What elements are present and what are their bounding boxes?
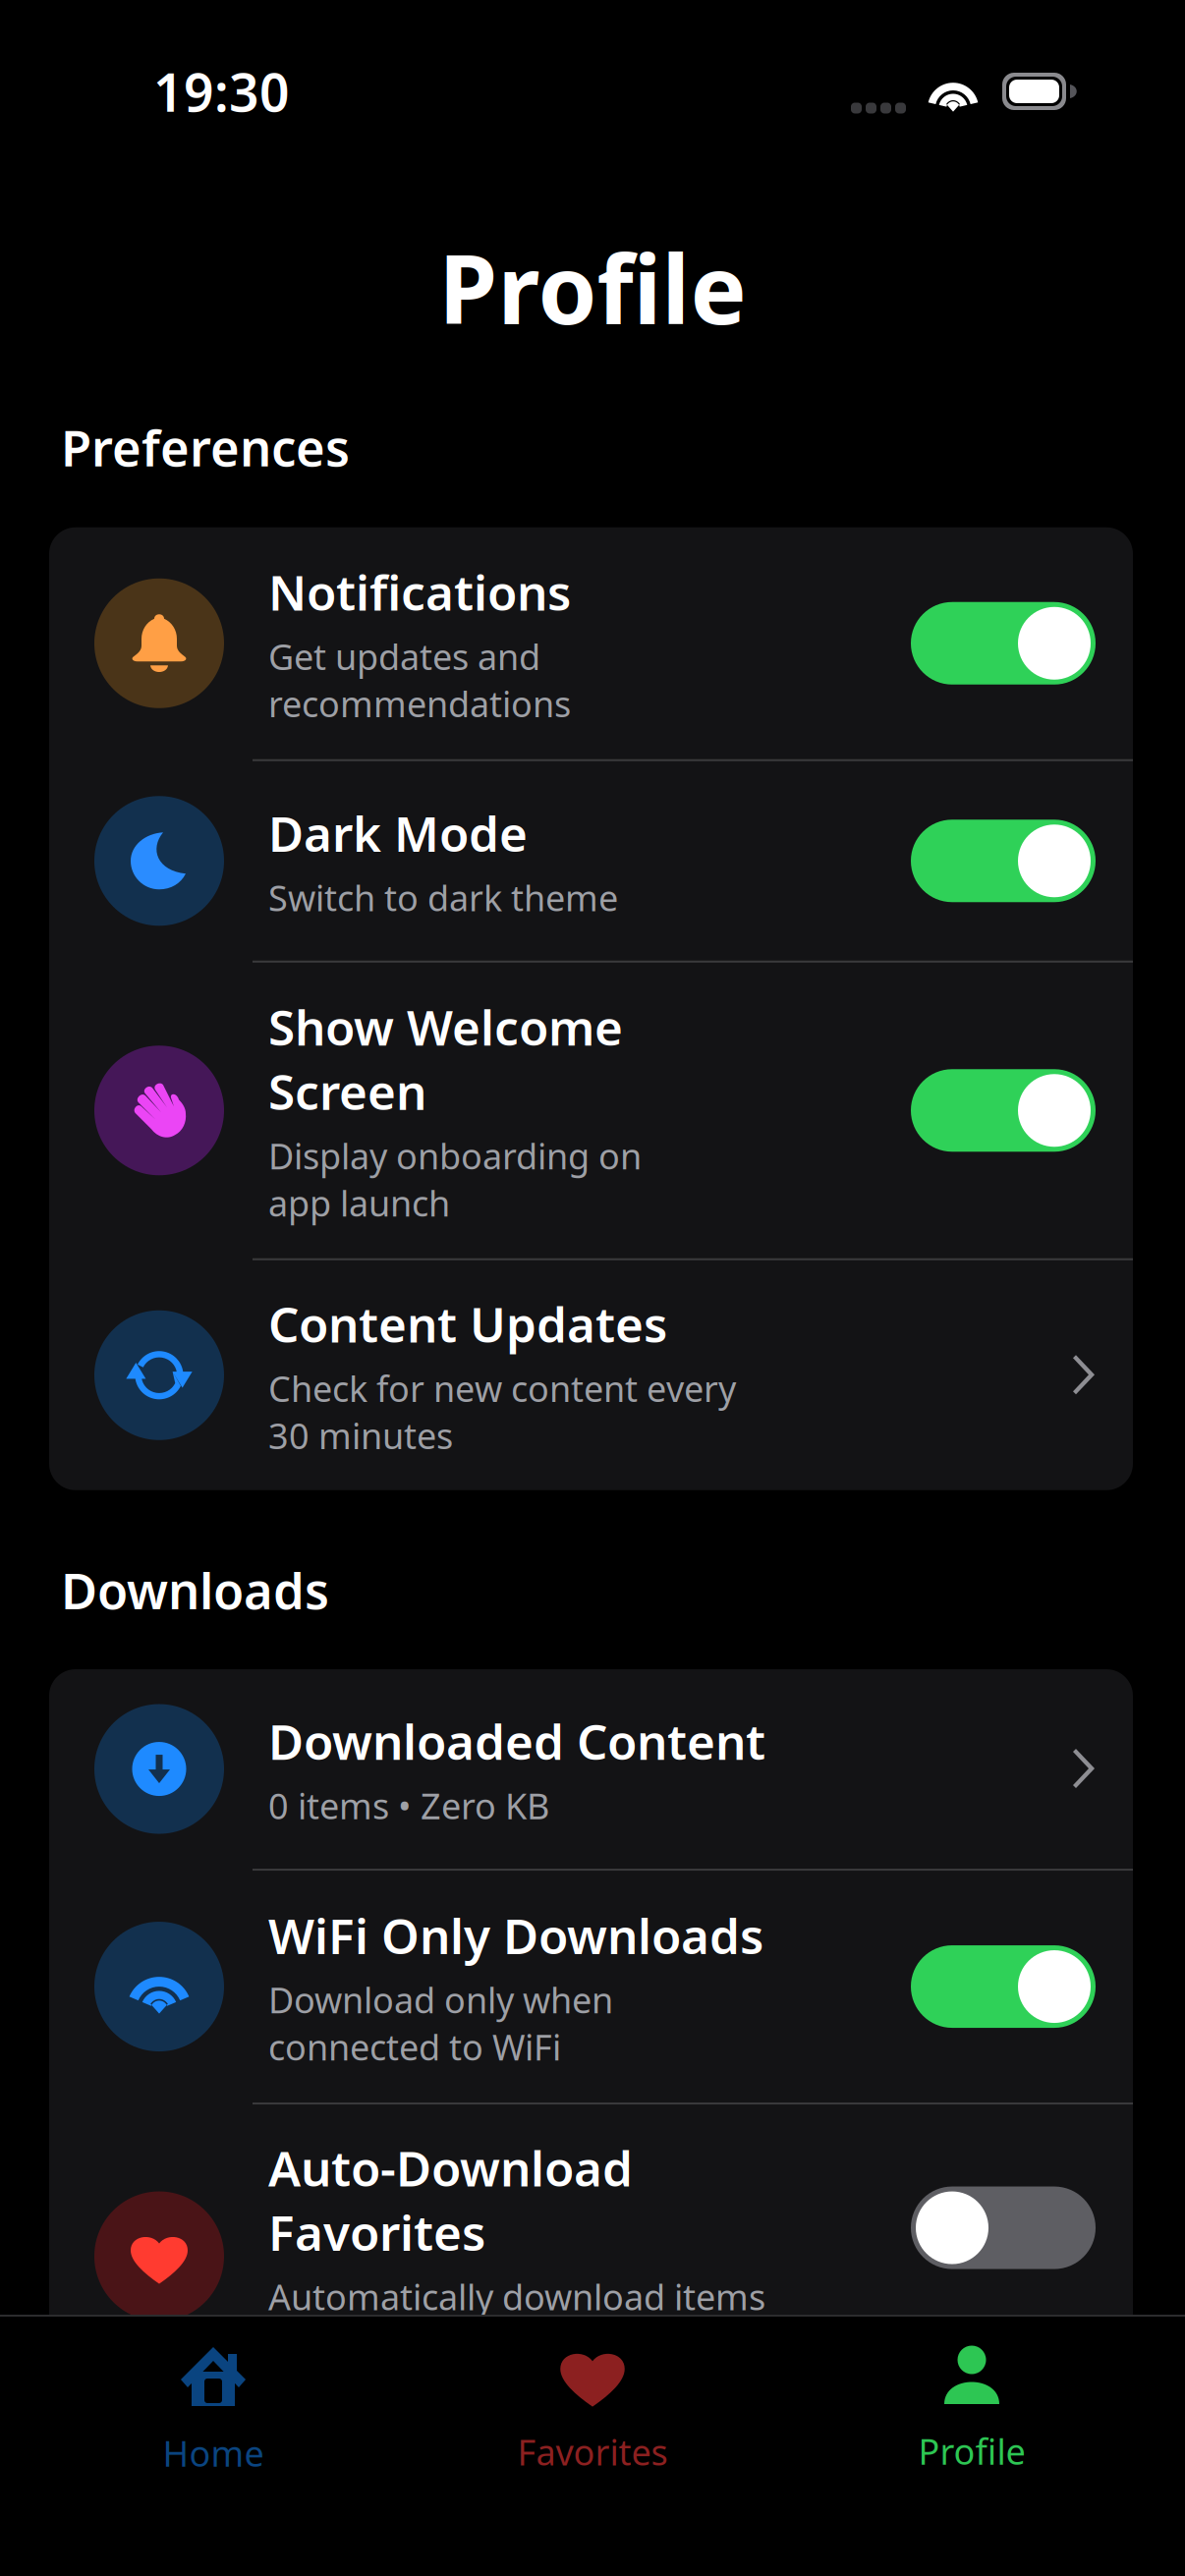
staticText: Auto-Download Favorites	[268, 2135, 633, 2264]
button[interactable]: Auto-Download Favorites	[49, 2105, 1133, 2351]
staticText: Notifications	[268, 560, 571, 624]
staticText: Home	[163, 2430, 264, 2477]
staticText: Check for new content every 30 minutes	[268, 1365, 736, 1459]
staticText: Favorites	[517, 2428, 668, 2475]
button[interactable]: Content Updates	[49, 1260, 1133, 1490]
staticText: Show Welcome Screen	[268, 995, 623, 1123]
staticText: WiFi Only Downloads	[268, 1903, 763, 1967]
staticText: Display onboarding on app launch	[268, 1132, 642, 1226]
staticText: 0 items • Zero KB	[268, 1782, 549, 1829]
staticText: Automatically download items	[268, 2273, 765, 2320]
button[interactable]: WiFi Only Downloads	[49, 1871, 1133, 2103]
staticText: Content Updates	[268, 1292, 667, 1356]
staticText: Preferences	[61, 414, 350, 480]
staticText: Downloaded Content	[268, 1709, 765, 1773]
button[interactable]: Downloaded Content	[49, 1669, 1133, 1869]
staticText: Switch to dark theme	[268, 874, 618, 921]
button[interactable]: Notifications	[49, 527, 1133, 759]
button[interactable]: Profile	[782, 2345, 1161, 2475]
button[interactable]: Switch, on	[911, 820, 1096, 902]
button[interactable]: Switch, on	[911, 1069, 1096, 1152]
button[interactable]: Favorites	[403, 2345, 782, 2475]
staticText: Profile	[918, 2428, 1025, 2475]
button[interactable]: Switch, on	[911, 602, 1096, 685]
staticText: Download only when connected to WiFi	[268, 1976, 613, 2070]
staticText: Profile	[439, 225, 746, 350]
button[interactable]: Show Welcome Screen	[49, 963, 1133, 1258]
button[interactable]: Switch, off	[911, 2187, 1096, 2269]
staticText: Downloads	[61, 1557, 329, 1623]
button[interactable]: Dark Mode	[49, 761, 1133, 961]
staticText: 19:30	[153, 57, 290, 126]
staticText: Get updates and recommendations	[268, 633, 571, 727]
button[interactable]: Switch, on	[911, 1945, 1096, 2028]
button[interactable]: Home	[24, 2343, 403, 2477]
staticText: Dark Mode	[268, 801, 528, 865]
